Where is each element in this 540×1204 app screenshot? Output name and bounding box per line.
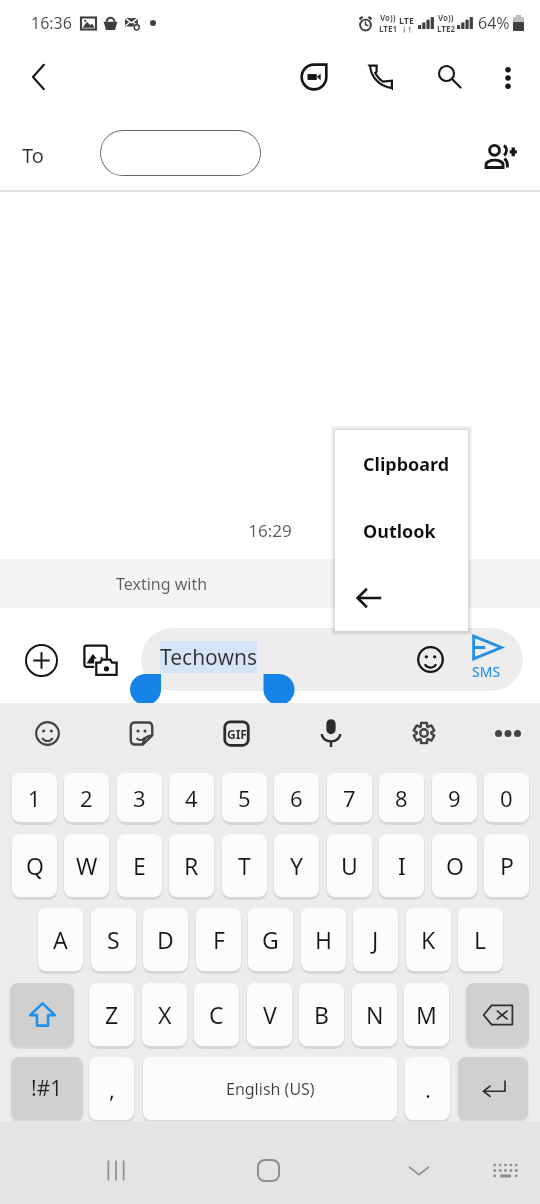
button[interactable]: Clipboard	[335, 430, 468, 498]
staticText: 9	[448, 783, 461, 813]
staticText: H	[315, 924, 333, 955]
button[interactable]: Hide keyboard	[393, 1144, 445, 1196]
button[interactable]: Add recipient	[477, 132, 525, 180]
button[interactable]: 7	[327, 773, 372, 822]
button[interactable]: 3	[117, 773, 162, 822]
staticText: B	[314, 999, 329, 1030]
staticText: Texting with	[116, 573, 208, 595]
button[interactable]: J	[353, 908, 398, 971]
staticText: Techowns	[160, 643, 257, 672]
button[interactable]: M	[404, 983, 449, 1046]
button[interactable]: Shift	[10, 983, 74, 1046]
button[interactable]: Keyboard layout	[479, 1144, 531, 1196]
button[interactable]: .	[405, 1057, 450, 1120]
button[interactable]: P	[484, 834, 529, 897]
button[interactable]: B	[299, 983, 344, 1046]
button[interactable]: 5	[222, 773, 267, 822]
button[interactable]: Add attachment	[17, 636, 65, 684]
button[interactable]: N	[352, 983, 397, 1046]
button[interactable]: Outlook	[335, 498, 468, 564]
button[interactable]: 0	[484, 773, 529, 822]
button[interactable]: C	[194, 983, 239, 1046]
button[interactable]: I	[379, 834, 424, 897]
button[interactable]: Emoji	[409, 638, 451, 680]
staticText: 6	[290, 783, 303, 813]
button[interactable]: F	[196, 908, 241, 971]
button[interactable]: 1	[12, 773, 57, 822]
button[interactable]: More	[482, 707, 534, 759]
staticText: 16:29	[0, 519, 540, 542]
button[interactable]: E	[117, 834, 162, 897]
button[interactable]: U	[327, 834, 372, 897]
button[interactable]: Back	[335, 564, 468, 631]
staticText: 1	[28, 783, 41, 813]
staticText: K	[421, 924, 436, 955]
button[interactable]: W	[64, 834, 109, 897]
staticText: Y	[290, 850, 304, 881]
button[interactable]: G	[248, 908, 293, 971]
staticText: L	[474, 924, 487, 955]
button[interactable]: ,	[89, 1057, 134, 1120]
staticText: Vo))	[380, 12, 396, 23]
button[interactable]: Q	[12, 834, 57, 897]
button[interactable]: 8	[379, 773, 424, 822]
button[interactable]: Voice input	[305, 707, 357, 759]
staticText: O	[446, 850, 464, 881]
button[interactable]: Enter	[458, 1057, 528, 1120]
button[interactable]	[100, 130, 261, 176]
staticText: I	[398, 850, 406, 881]
staticText: 5	[238, 783, 251, 813]
button[interactable]: Video call	[290, 53, 338, 101]
button[interactable]: More options	[484, 54, 532, 102]
button[interactable]: Call	[357, 53, 405, 101]
staticText: A	[53, 924, 68, 955]
button[interactable]: Home	[242, 1144, 294, 1196]
staticText: W	[76, 850, 98, 881]
button[interactable]: Search	[425, 52, 473, 100]
staticText: .	[425, 1074, 431, 1104]
button[interactable]: Recents	[90, 1144, 142, 1196]
button[interactable]: A	[38, 908, 83, 971]
staticText: 4	[185, 783, 198, 813]
button[interactable]: 2	[64, 773, 109, 822]
staticText: E	[133, 850, 146, 881]
button[interactable]: GIF	[210, 707, 262, 759]
staticText: 16:36	[31, 12, 72, 34]
button[interactable]: Techowns	[141, 628, 523, 691]
button[interactable]: Backspace	[466, 983, 529, 1046]
button[interactable]: 4	[169, 773, 214, 822]
button[interactable]: Y	[274, 834, 319, 897]
button[interactable]: English (US)	[143, 1057, 397, 1120]
button[interactable]: H	[301, 908, 346, 971]
button[interactable]: X	[142, 983, 187, 1046]
button[interactable]: R	[169, 834, 214, 897]
staticText: N	[366, 999, 384, 1030]
button[interactable]: V	[247, 983, 292, 1046]
staticText: LTE2	[437, 23, 455, 34]
staticText: Outlook	[363, 519, 436, 544]
button[interactable]: Send SMS	[456, 634, 516, 681]
staticText: F	[213, 924, 225, 955]
button[interactable]: T	[222, 834, 267, 897]
staticText: R	[184, 850, 199, 881]
staticText: LTE1	[379, 23, 397, 34]
staticText: 8	[395, 783, 408, 813]
button[interactable]: Z	[89, 983, 134, 1046]
button[interactable]: !#1	[11, 1057, 83, 1120]
button[interactable]: Settings	[398, 707, 450, 759]
staticText: X	[158, 999, 172, 1030]
button[interactable]: Stickers	[115, 707, 167, 759]
button[interactable]: Back	[14, 53, 62, 101]
button[interactable]: Gallery	[76, 636, 124, 684]
staticText: ,	[109, 1074, 115, 1104]
button[interactable]: 9	[432, 773, 477, 822]
button[interactable]: 6	[274, 773, 319, 822]
staticText: Q	[26, 850, 44, 881]
button[interactable]: K	[406, 908, 451, 971]
button[interactable]: S	[91, 908, 136, 971]
button[interactable]: Emoji	[21, 707, 73, 759]
button[interactable]: L	[458, 908, 503, 971]
button[interactable]: D	[143, 908, 188, 971]
staticText: 3	[133, 783, 146, 813]
button[interactable]: O	[432, 834, 477, 897]
